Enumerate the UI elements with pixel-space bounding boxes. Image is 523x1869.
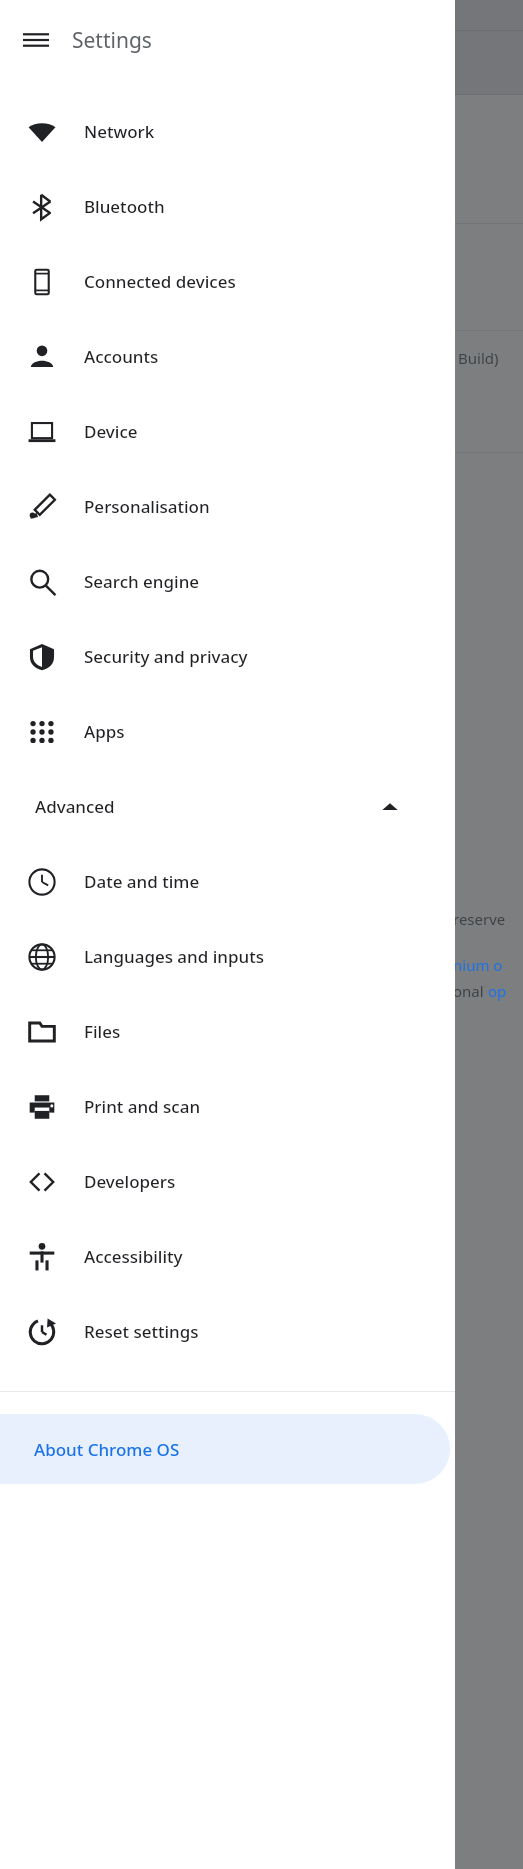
staticText: Security and privacy bbox=[84, 645, 248, 668]
button[interactable]: Bluetooth bbox=[0, 169, 455, 244]
staticText: Connected devices bbox=[84, 270, 236, 293]
button[interactable]: Developers bbox=[0, 1144, 455, 1219]
button[interactable]: Network bbox=[0, 94, 455, 169]
staticText: Network bbox=[84, 120, 155, 143]
button[interactable]: Reset settings bbox=[0, 1294, 455, 1369]
staticText: nium o bbox=[453, 955, 503, 975]
staticText: Advanced bbox=[35, 795, 115, 818]
button[interactable]: Connected devices bbox=[0, 244, 455, 319]
button[interactable]: Device bbox=[0, 394, 455, 469]
staticText: Search engine bbox=[84, 570, 200, 593]
staticText: Reset settings bbox=[84, 1320, 199, 1343]
button[interactable]: About Chrome OS bbox=[0, 1414, 450, 1484]
staticText: Apps bbox=[84, 720, 125, 743]
button[interactable]: Accounts bbox=[0, 319, 455, 394]
button[interactable]: Menu bbox=[0, 10, 72, 70]
button[interactable]: Languages and inputs bbox=[0, 919, 455, 994]
staticText: Device bbox=[84, 420, 138, 443]
staticText: Date and time bbox=[84, 870, 200, 893]
button[interactable]: Personalisation bbox=[0, 469, 455, 544]
staticText: About Chrome OS bbox=[34, 1438, 180, 1461]
button[interactable]: Security and privacy bbox=[0, 619, 455, 694]
staticText: Bluetooth bbox=[84, 195, 165, 218]
button[interactable]: Advanced bbox=[0, 769, 455, 844]
button[interactable]: Files bbox=[0, 994, 455, 1069]
staticText: Developers bbox=[84, 1170, 176, 1193]
staticText: Print and scan bbox=[84, 1095, 201, 1118]
staticText: Languages and inputs bbox=[84, 945, 264, 968]
staticText: Settings bbox=[72, 26, 152, 55]
button[interactable]: Print and scan bbox=[0, 1069, 455, 1144]
button[interactable]: Search engine bbox=[0, 544, 455, 619]
button[interactable]: Apps bbox=[0, 694, 455, 769]
staticText: Files bbox=[84, 1020, 121, 1043]
staticText: Accessibility bbox=[84, 1245, 183, 1268]
staticText: Build) bbox=[458, 348, 499, 368]
staticText: Personalisation bbox=[84, 495, 210, 518]
button[interactable]: Accessibility bbox=[0, 1219, 455, 1294]
staticText: op bbox=[488, 981, 507, 1001]
button[interactable]: Date and time bbox=[0, 844, 455, 919]
staticText: Accounts bbox=[84, 345, 159, 368]
staticText: onal bbox=[453, 981, 488, 1001]
staticText: reserve bbox=[453, 909, 506, 929]
